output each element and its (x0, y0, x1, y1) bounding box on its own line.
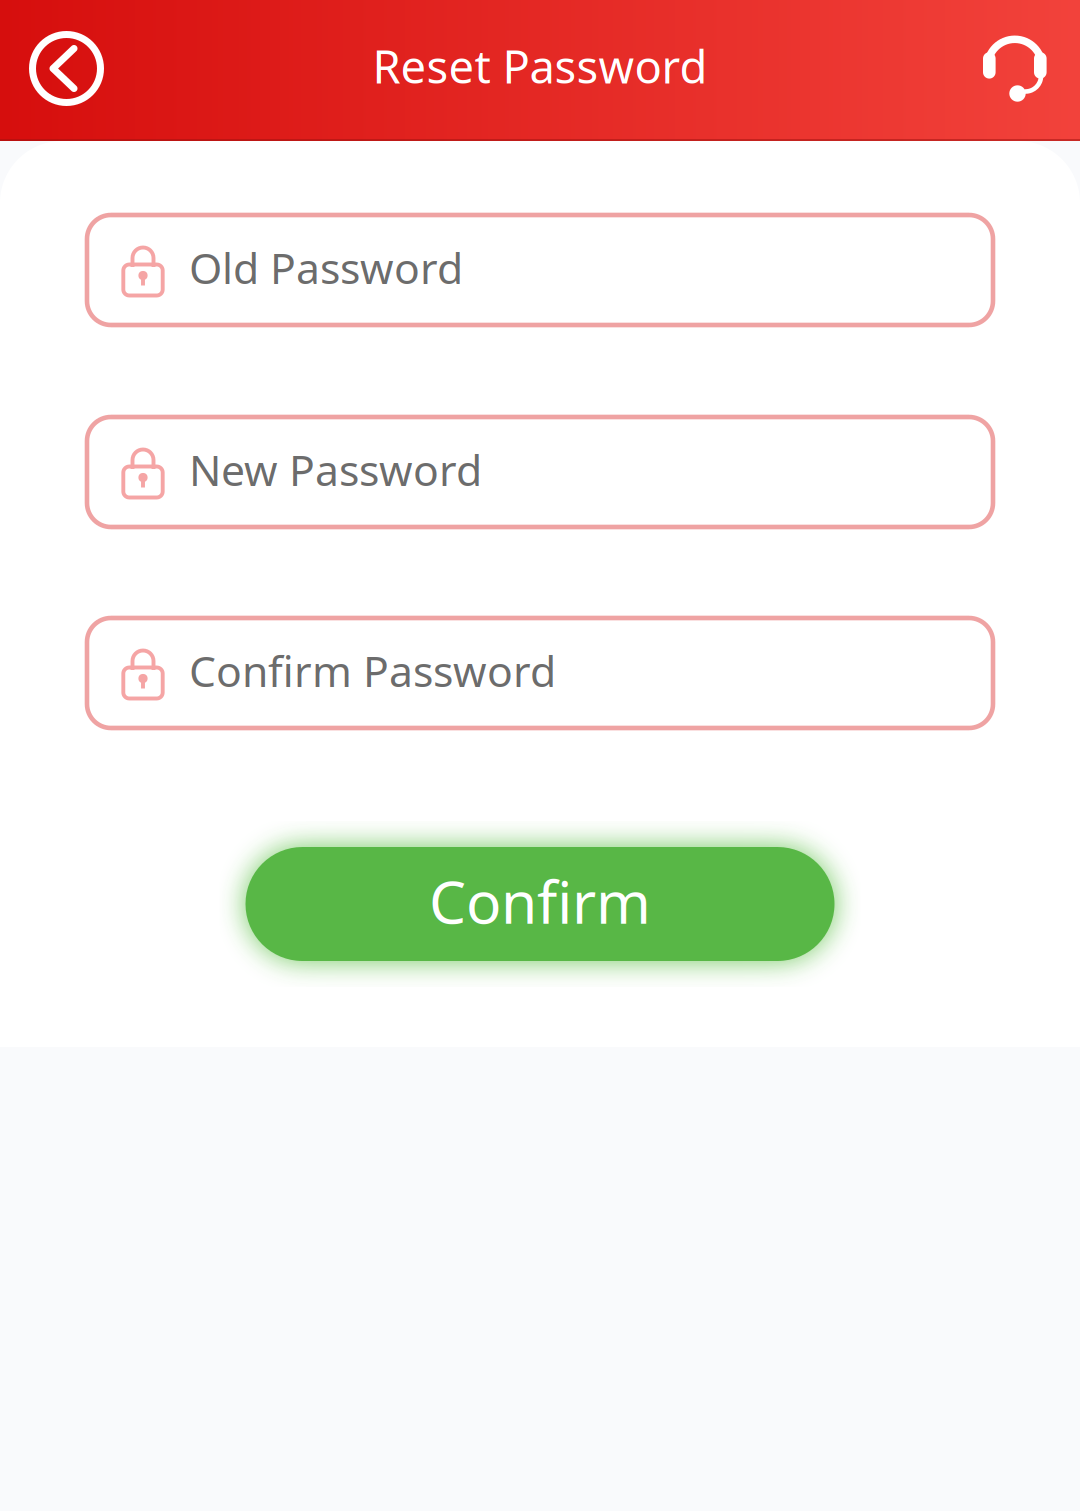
button[interactable]: Old Password (87, 215, 993, 325)
staticText: Old Password (189, 239, 463, 296)
staticText: New Password (189, 441, 482, 498)
staticText: Reset Password (372, 36, 707, 96)
button[interactable]: Back (0, 0, 133, 141)
button[interactable]: Confirm (245, 847, 834, 961)
button[interactable]: Customer Support (950, 0, 1080, 141)
button[interactable]: Confirm Password (87, 618, 993, 728)
staticText: Confirm (429, 862, 651, 940)
button[interactable]: New Password (87, 417, 993, 527)
staticText: Confirm Password (189, 642, 556, 699)
